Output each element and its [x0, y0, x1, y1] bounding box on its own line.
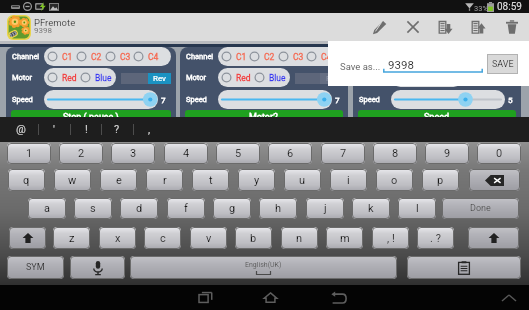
button[interactable]: Rev — [468, 73, 516, 84]
staticText: C2 — [91, 52, 102, 62]
button[interactable]: Stop ( pause ) — [11, 110, 171, 117]
button[interactable]: Home — [252, 285, 288, 310]
button[interactable]: j — [306, 198, 344, 219]
button[interactable]: l — [398, 198, 436, 219]
staticText: 5 — [235, 147, 242, 160]
button[interactable]: t — [192, 169, 229, 191]
button[interactable]: s — [74, 198, 112, 219]
button[interactable]: Shift — [468, 227, 519, 249]
staticText: h — [275, 202, 282, 215]
staticText: C2 — [264, 52, 275, 62]
staticText: e — [116, 174, 122, 187]
button[interactable]: Back — [321, 285, 357, 310]
button[interactable]: g — [213, 198, 251, 219]
button[interactable]: 1 — [7, 143, 51, 164]
button[interactable]: u — [284, 169, 321, 191]
staticText: C4 — [321, 52, 332, 62]
button[interactable]: Motor2 — [185, 110, 343, 117]
button[interactable]: Rev — [121, 73, 171, 84]
button[interactable]: Recents — [187, 285, 223, 310]
staticText: Speed — [424, 112, 450, 117]
button[interactable]: b — [235, 227, 272, 249]
button[interactable]: p — [422, 169, 459, 191]
button[interactable]: Delete — [495, 13, 528, 41]
button[interactable]: v — [190, 227, 227, 249]
button[interactable] — [218, 90, 332, 109]
button[interactable]: o — [376, 169, 413, 191]
button[interactable]: Hide keyboard — [497, 286, 521, 310]
staticText: C1 — [409, 52, 420, 62]
button[interactable]: Voice input — [70, 256, 125, 279]
staticText: 7 — [340, 147, 347, 160]
staticText: 9398 — [388, 58, 414, 71]
staticText: f — [184, 202, 188, 215]
button[interactable]: y — [238, 169, 275, 191]
button[interactable]: Space — [130, 256, 397, 279]
button[interactable] — [44, 90, 158, 109]
button[interactable]: 6 — [268, 143, 312, 164]
button[interactable]: @ — [5, 117, 37, 142]
button[interactable]: c — [144, 227, 181, 249]
button[interactable]: w — [54, 169, 91, 191]
button[interactable]: , ! — [372, 227, 409, 249]
button[interactable]: , — [133, 117, 165, 142]
button[interactable]: m — [326, 227, 363, 249]
button[interactable]: 4 — [164, 143, 208, 164]
button[interactable]: 0 — [477, 143, 521, 164]
staticText: 2 — [78, 147, 85, 160]
staticText: Save as... — [340, 61, 381, 72]
button[interactable]: Close — [396, 13, 429, 41]
staticText: k — [368, 202, 374, 215]
button[interactable]: r — [146, 169, 183, 191]
button[interactable]: q — [8, 169, 45, 191]
button[interactable]: k — [352, 198, 390, 219]
button[interactable]: Red — [391, 68, 463, 87]
button[interactable]: x — [99, 227, 136, 249]
button[interactable]: z — [53, 227, 90, 249]
button[interactable]: ! — [70, 117, 102, 142]
button[interactable]: C1 — [44, 47, 171, 66]
staticText: Motor — [12, 73, 33, 82]
button[interactable]: Shift — [9, 227, 46, 249]
button[interactable]: Done — [442, 198, 519, 219]
button[interactable]: 2 — [59, 143, 103, 164]
button[interactable]: C1 — [218, 47, 343, 66]
button[interactable]: n — [281, 227, 318, 249]
button[interactable]: 7 — [321, 143, 365, 164]
button[interactable]: Backspace — [469, 169, 520, 191]
button[interactable]: C1 — [391, 47, 516, 66]
staticText: Red — [236, 73, 251, 83]
staticText: @ — [16, 123, 26, 136]
button[interactable]: 5 — [216, 143, 260, 164]
button[interactable]: 9 — [425, 143, 469, 164]
staticText: w — [68, 174, 77, 187]
button[interactable]: . ? — [417, 227, 454, 249]
button[interactable]: a — [28, 198, 66, 219]
button[interactable] — [391, 90, 505, 109]
staticText: v — [206, 232, 212, 245]
button[interactable]: Clipboard — [407, 256, 521, 279]
button[interactable]: Fw — [295, 73, 343, 84]
button[interactable]: f — [167, 198, 205, 219]
button[interactable]: d — [120, 198, 158, 219]
button[interactable]: Speed — [358, 110, 516, 117]
staticText: 9 — [444, 147, 451, 160]
button[interactable]: Red — [44, 68, 116, 87]
button[interactable]: e — [100, 169, 137, 191]
staticText: Fw — [326, 74, 337, 83]
button[interactable]: h — [259, 198, 297, 219]
staticText: ! — [85, 123, 88, 136]
staticText: Speed — [12, 95, 33, 104]
button[interactable]: Edit — [363, 13, 396, 41]
button[interactable]: i — [330, 169, 367, 191]
button[interactable]: Save — [462, 13, 495, 41]
button[interactable]: SAVE — [487, 54, 518, 74]
button[interactable]: ? — [101, 117, 133, 142]
button[interactable]: Red — [218, 68, 290, 87]
button[interactable]: Load — [429, 13, 462, 41]
button[interactable]: 8 — [373, 143, 417, 164]
button[interactable]: 3 — [111, 143, 155, 164]
button[interactable]: ' — [38, 117, 70, 142]
button[interactable]: Symbols — [7, 256, 64, 279]
staticText: SYM — [26, 262, 45, 273]
